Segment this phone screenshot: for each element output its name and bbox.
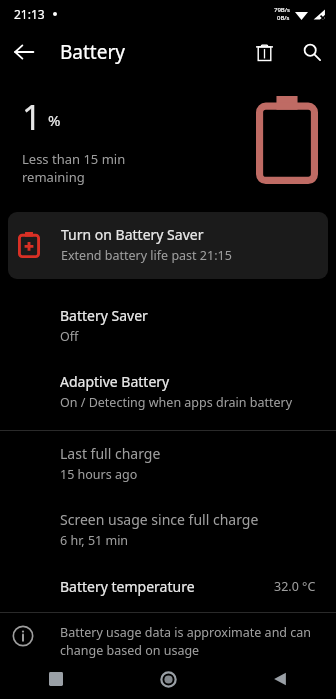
button[interactable]: Delete [240,28,288,76]
staticText: Less than 15 min remaining [22,150,126,186]
staticText: Battery Saver [60,306,148,325]
staticText: Extend battery life past 21:15 [61,247,232,264]
staticText: 21:13 [14,6,45,22]
button[interactable]: Home [112,659,224,699]
staticText: Adaptive Battery [60,372,170,391]
button[interactable]: Battery Saver [0,293,336,359]
staticText: Turn on Battery Saver [61,225,204,244]
staticText: Battery [60,39,240,65]
staticText: 1 [22,94,42,140]
staticText: 79B/s [274,6,290,14]
staticText: Off [60,328,79,345]
staticText: % [48,110,61,130]
button[interactable]: Back [0,28,48,76]
staticText: 6 hr, 51 min [60,532,129,549]
staticText: Battery usage data is approximate and ca… [60,624,316,659]
button[interactable]: Adaptive Battery [0,359,336,425]
staticText: 0B/s [277,14,290,22]
staticText: 32.0 °C [274,578,316,595]
button[interactable]: Screen usage since full charge [0,497,336,563]
staticText: Battery temperature [60,577,274,596]
staticText: On / Detecting when apps drain battery [60,394,293,411]
button[interactable]: Recents [0,659,112,699]
staticText: Last full charge [60,444,161,463]
button[interactable]: Battery temperature [0,563,336,612]
staticText: Screen usage since full charge [60,510,259,529]
button[interactable]: Back [224,659,336,699]
button[interactable]: Turn on Battery Saver [8,212,328,279]
button[interactable]: Last full charge [0,431,336,497]
staticText: 15 hours ago [60,466,138,483]
button[interactable]: Search [288,28,336,76]
